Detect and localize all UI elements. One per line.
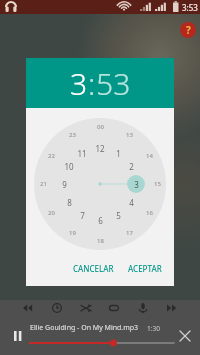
staticText: 7 bbox=[80, 210, 85, 221]
button[interactable]: Close bbox=[176, 327, 194, 345]
button[interactable]: Previous bbox=[20, 300, 36, 316]
staticText: 20 bbox=[48, 209, 55, 217]
button[interactable]: Sleep timer bbox=[49, 300, 65, 316]
staticText: CANCELAR bbox=[73, 263, 114, 274]
staticText: 13 bbox=[126, 131, 133, 139]
button[interactable]: Pause bbox=[8, 326, 28, 346]
staticText: 1:30 bbox=[147, 324, 160, 333]
staticText: 19 bbox=[69, 229, 76, 237]
staticText: ACEPTAR bbox=[128, 263, 162, 274]
staticText: 4 bbox=[129, 197, 134, 208]
staticText: 00 bbox=[97, 123, 104, 131]
staticText: 8 bbox=[67, 197, 72, 208]
button[interactable] bbox=[30, 338, 174, 348]
button[interactable]: Equalizer bbox=[135, 300, 151, 316]
staticText: 5 bbox=[116, 210, 121, 221]
staticText: 12 bbox=[95, 143, 105, 154]
button[interactable]: Repeat bbox=[106, 300, 122, 316]
button[interactable]: CANCELAR bbox=[69, 260, 118, 277]
staticText: 6 bbox=[98, 215, 103, 226]
staticText: 18 bbox=[97, 237, 104, 245]
staticText: 17 bbox=[126, 229, 133, 237]
staticText: 21 bbox=[40, 180, 47, 188]
staticText: 22 bbox=[48, 152, 55, 160]
button[interactable]: Help bbox=[180, 22, 196, 38]
staticText: 10 bbox=[64, 161, 74, 172]
button[interactable]: 3 bbox=[70, 63, 88, 104]
staticText: : bbox=[88, 63, 96, 104]
button[interactable]: Next bbox=[164, 300, 180, 316]
button[interactable]: ACEPTAR bbox=[124, 260, 166, 277]
staticText: 11 bbox=[77, 148, 87, 159]
staticText: 15 bbox=[154, 180, 161, 188]
staticText: 14 bbox=[146, 152, 153, 160]
staticText: 2 bbox=[129, 161, 134, 172]
staticText: Ellie Goulding - On My Mind.mp3 bbox=[30, 323, 139, 333]
staticText: 3 bbox=[134, 179, 139, 190]
staticText: ? bbox=[186, 23, 191, 37]
button[interactable]: 53 bbox=[96, 63, 131, 104]
staticText: 9 bbox=[62, 179, 67, 190]
staticText: 16 bbox=[146, 209, 153, 217]
button[interactable]: Shuffle bbox=[78, 300, 94, 316]
staticText: 23 bbox=[69, 131, 76, 139]
staticText: 1 bbox=[116, 148, 121, 159]
staticText: 3:53 bbox=[182, 2, 198, 13]
